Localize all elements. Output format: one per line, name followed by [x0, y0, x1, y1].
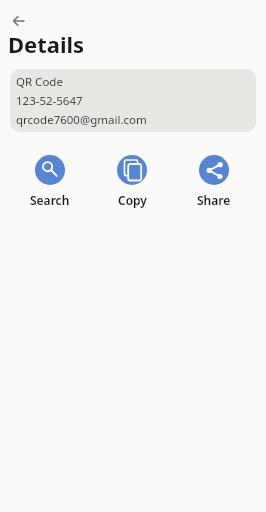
staticText: Details — [8, 29, 85, 59]
staticText: 123-52-5647 — [16, 93, 83, 109]
button[interactable]: QR Code — [10, 69, 256, 132]
button[interactable]: Share — [173, 155, 255, 208]
staticText: Search — [30, 192, 70, 208]
staticText: qrcode7600@gmail.com — [16, 112, 147, 128]
staticText: QR Code — [16, 74, 63, 90]
button[interactable]: Copy — [91, 155, 173, 208]
staticText: Share — [197, 192, 231, 208]
button[interactable] — [7, 10, 31, 32]
staticText: Copy — [118, 192, 147, 208]
button[interactable]: Search — [9, 155, 91, 208]
